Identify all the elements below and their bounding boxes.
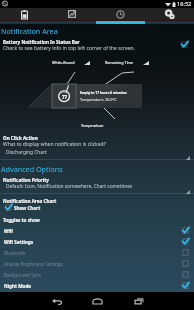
staticText: Notification Area Chart — [3, 198, 57, 204]
button[interactable]: Wifi — [0, 225, 194, 236]
button[interactable]: Night Mode — [0, 280, 194, 291]
button[interactable]: Wifi Settings — [0, 236, 194, 247]
staticText: What to display when notification is cli… — [3, 141, 106, 148]
staticText: Background Sync — [4, 272, 182, 278]
button[interactable]: Bluetooth — [0, 247, 194, 258]
staticText: Advanced Options — [1, 164, 63, 174]
button[interactable]: Display Brightness Settings — [0, 258, 194, 269]
button[interactable]: Settings — [145, 8, 194, 20]
staticText: Display Brightness Settings — [4, 261, 182, 267]
staticText: Empty in 17 hours 6 minutes — [80, 90, 127, 94]
staticText: Default: Icon, Notification somewhere, C… — [6, 183, 133, 190]
staticText: Night Mode — [4, 283, 182, 289]
staticText: White-Round — [52, 60, 75, 65]
staticText: 16:52 — [177, 0, 192, 8]
button[interactable]: Back — [36, 292, 77, 310]
staticText: Notification Priority — [3, 177, 49, 183]
staticText: Wifi Settings — [4, 239, 182, 245]
button[interactable]: Home — [77, 292, 118, 310]
button[interactable]: Recents — [118, 292, 159, 310]
staticText: Temperature: 26.0°C — [80, 97, 117, 102]
staticText: On Click Action — [3, 135, 38, 141]
button[interactable]: Notification — [96, 8, 145, 20]
button[interactable]: Notification Priority — [0, 177, 194, 189]
staticText: Bluetooth — [4, 250, 182, 256]
button[interactable]: Battery — [0, 8, 48, 20]
button[interactable]: Notification Area Chart — [0, 198, 194, 210]
button[interactable]: Chart — [48, 8, 96, 20]
staticText: Show Chart — [14, 205, 41, 211]
button[interactable]: Battery Notification In Status Bar — [0, 39, 194, 50]
staticText: Notification Area — [1, 26, 58, 36]
staticText: Toggles to show — [3, 217, 40, 223]
staticText: Remaining Time — [105, 60, 134, 65]
staticText: Temperature — [81, 123, 104, 128]
button[interactable]: Background Sync — [0, 269, 194, 280]
staticText: 77 — [62, 94, 68, 100]
staticText: Wifi — [4, 228, 182, 234]
staticText: Discharging Chart — [6, 149, 47, 156]
button[interactable]: On Click Action — [0, 135, 194, 155]
staticText: Battery Notification In Status Bar — [3, 39, 80, 45]
staticText: Check to see battery info in top left co… — [3, 45, 136, 52]
